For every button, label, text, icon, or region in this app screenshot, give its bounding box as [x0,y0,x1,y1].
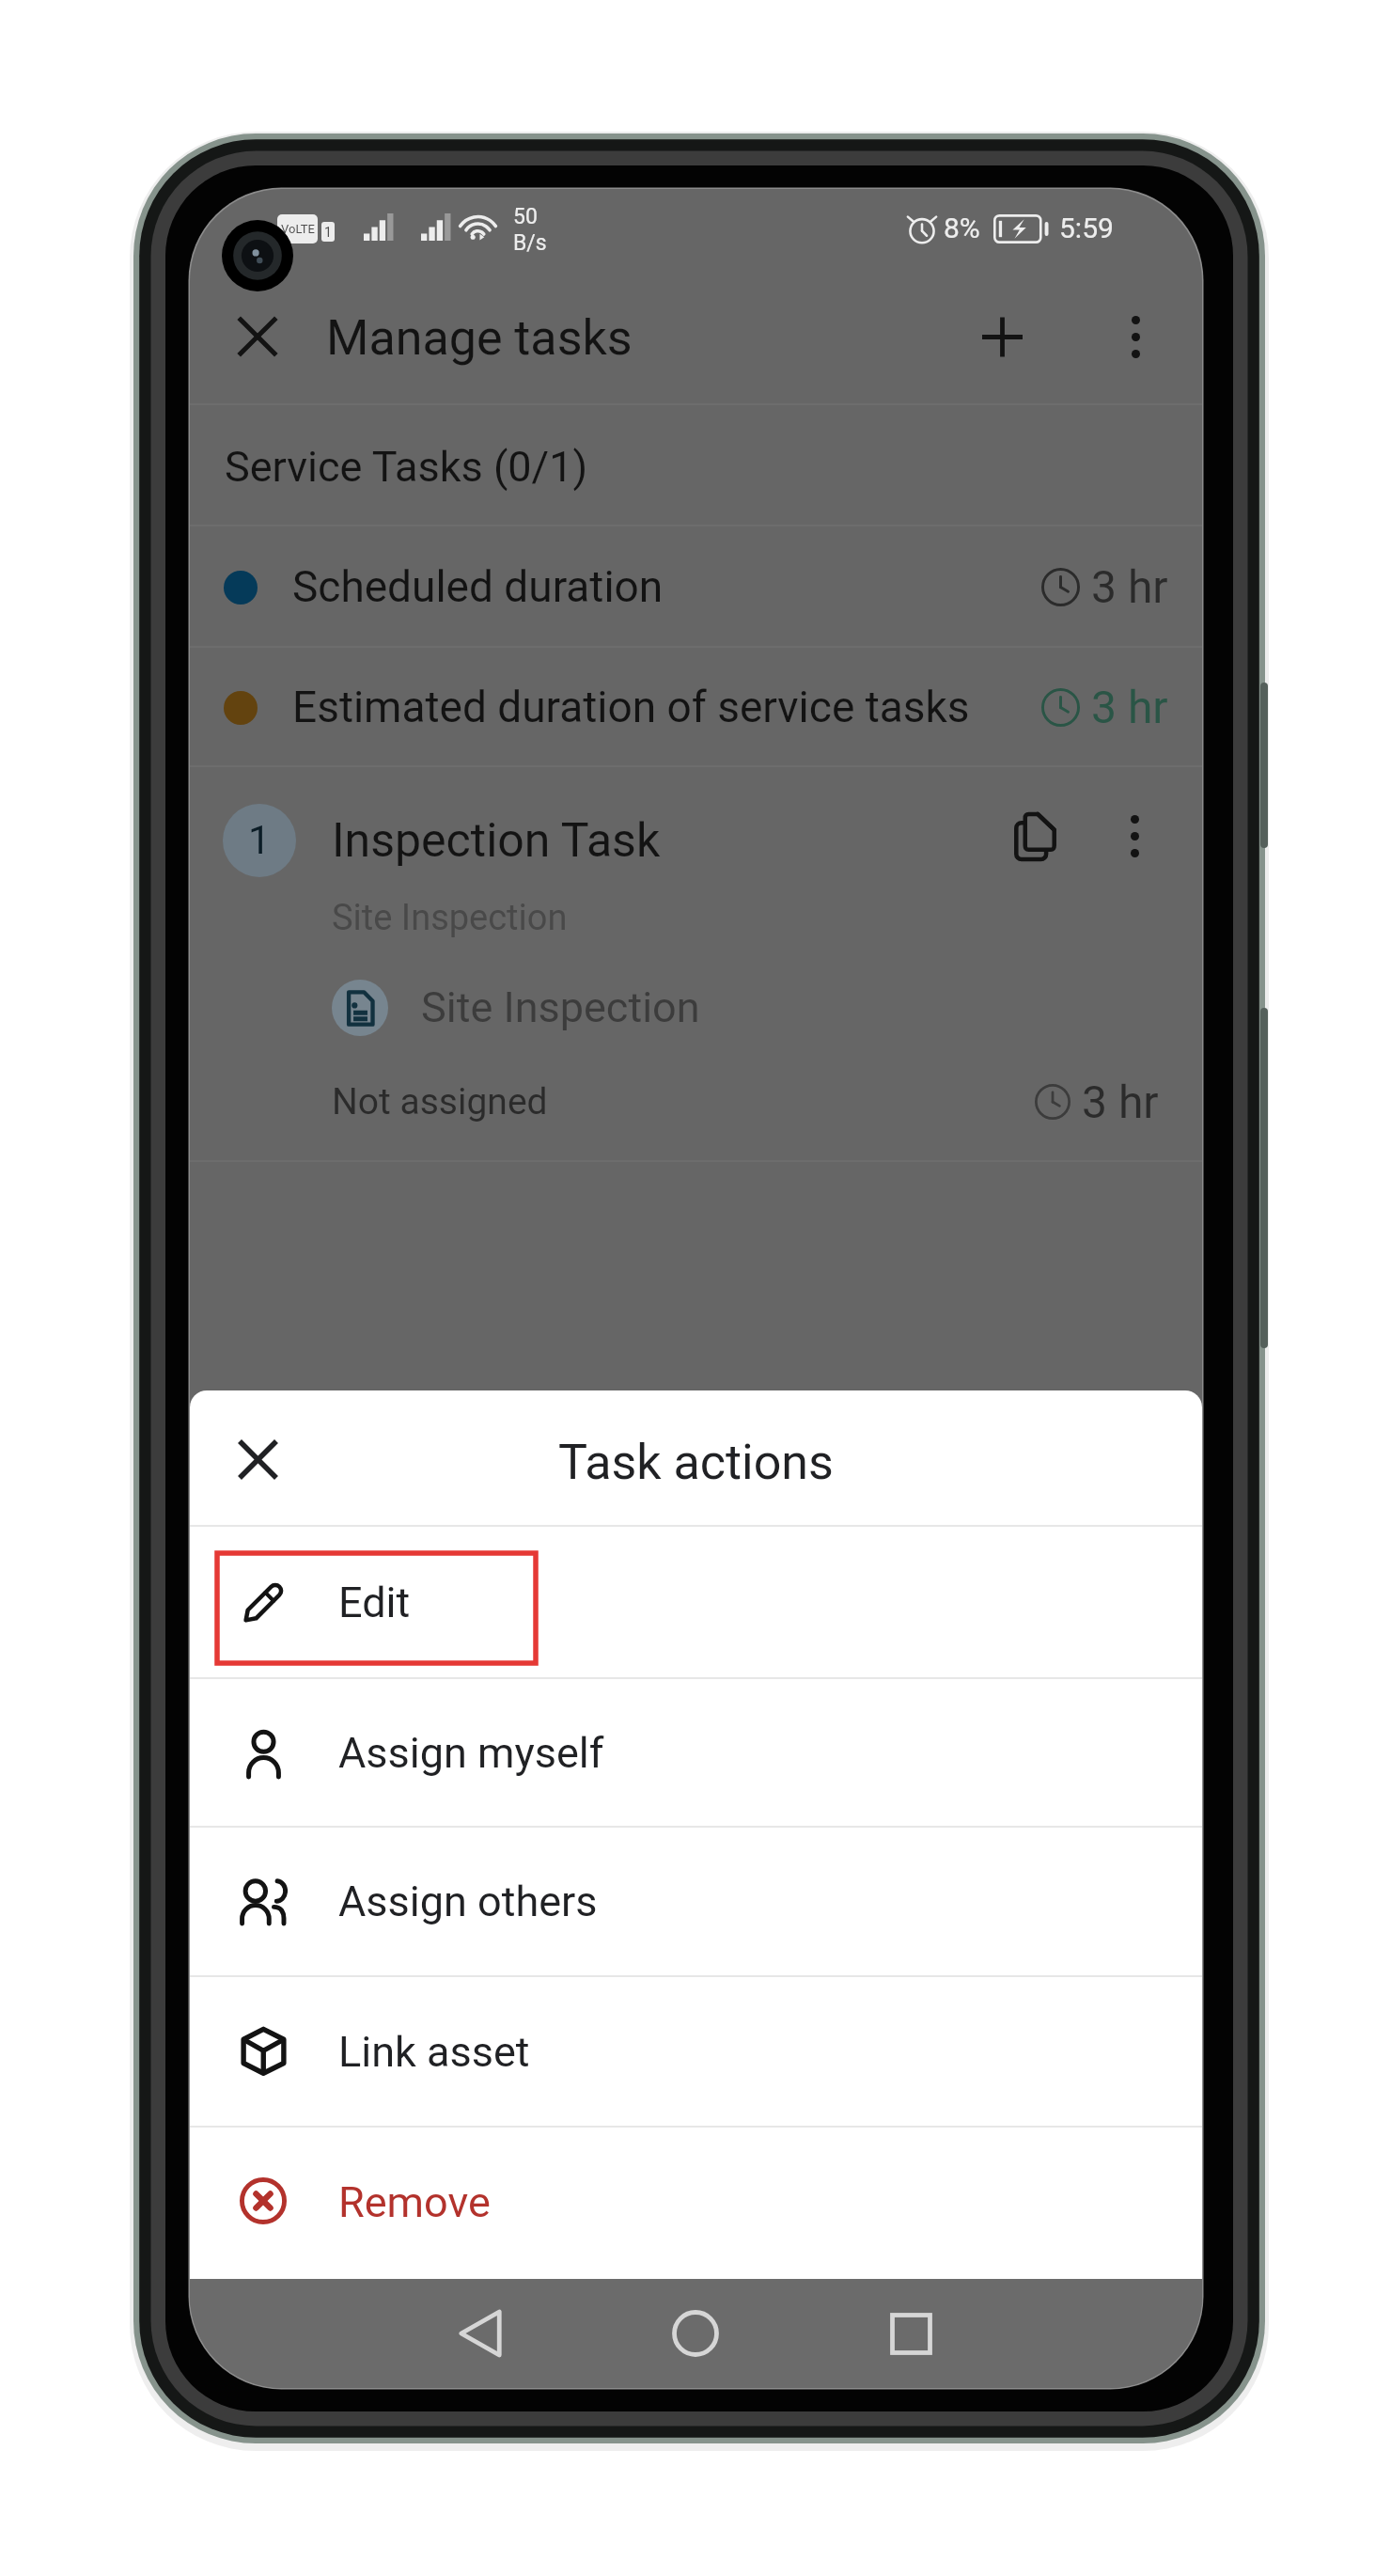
staticText: 3 hr [1091,681,1168,733]
staticText: B/s [513,230,547,256]
staticText: VoLTE [281,222,315,236]
button[interactable]: More options [1090,291,1180,382]
staticText: 5:59 [1059,212,1114,244]
button[interactable]: Task options [1091,793,1178,879]
staticText: Link asset [338,2027,530,2077]
staticText: Remove [338,2177,491,2227]
staticText: Site Inspection [332,897,568,939]
staticText: 8% [944,212,980,244]
button[interactable]: Assign others [190,1828,1202,1977]
staticText: 1 [248,817,271,863]
staticText: Manage tasks [326,309,633,367]
button[interactable]: Estimated duration of service tasks [190,648,1202,767]
button[interactable]: Home [587,2279,804,2388]
button[interactable]: Recents [804,2279,1018,2388]
staticText: 50 [513,204,538,229]
button[interactable]: Close [212,291,303,382]
staticText: 1 [324,225,332,240]
button[interactable]: Close sheet [212,1414,303,1504]
staticText: 3 hr [1091,560,1168,613]
button[interactable]: Scheduled duration [190,526,1202,648]
staticText: Service Tasks (0/1) [225,442,588,492]
staticText: 3 hr [1082,1076,1159,1128]
button[interactable]: Duplicate task [992,793,1078,879]
button[interactable]: Remove [190,2128,1202,2279]
staticText: Estimated duration of service tasks [292,682,970,732]
staticText: Scheduled duration [292,561,664,612]
button[interactable]: Link asset [190,1977,1202,2128]
staticText: Inspection Task [332,813,661,869]
button[interactable]: Add task [957,291,1047,382]
staticText: Assign others [338,1877,598,1926]
button[interactable]: Edit [190,1527,1202,1679]
staticText: Site Inspection [421,982,700,1032]
staticText: Not assigned [332,1080,548,1123]
staticText: Task actions [558,1434,834,1491]
staticText: Edit [338,1578,411,1627]
button[interactable]: Assign myself [190,1679,1202,1828]
button[interactable]: Back [373,2279,587,2388]
staticText: Assign myself [338,1728,604,1778]
